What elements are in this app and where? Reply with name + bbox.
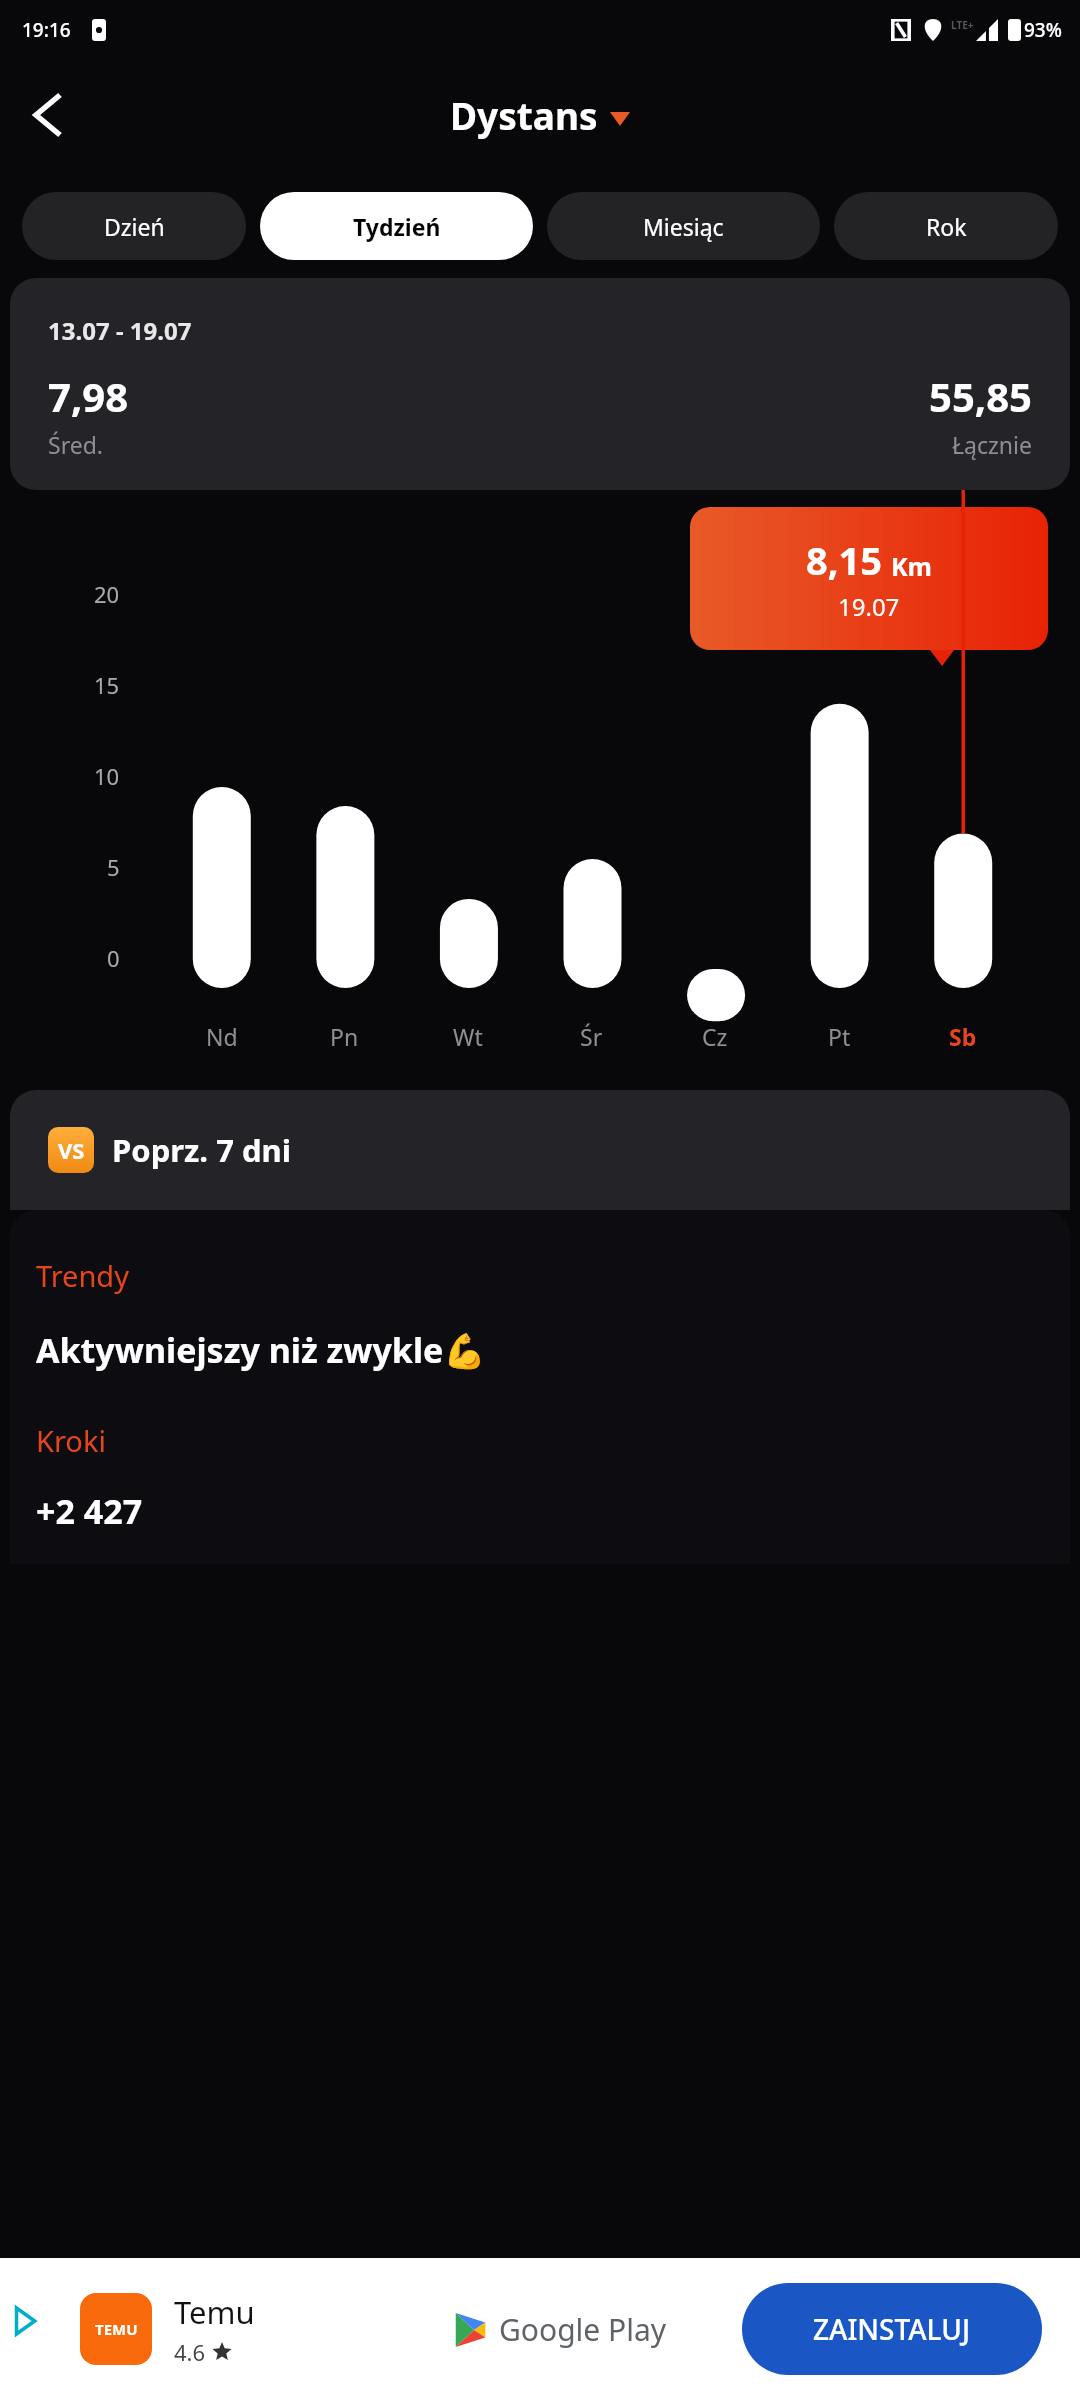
staticText: 19.07 [838, 590, 900, 623]
staticText: 19:16 [22, 17, 71, 43]
staticText: +2 427 [36, 1488, 143, 1534]
button[interactable]: 8,15 [690, 507, 1048, 650]
button[interactable]: Rok [834, 192, 1058, 260]
button[interactable]: ZAINSTALUJ [742, 2283, 1042, 2375]
staticText: TEMU [95, 2319, 138, 2339]
staticText: 20 [94, 579, 120, 609]
button[interactable]: Dystans [450, 90, 630, 140]
button[interactable]: TEMU [0, 2258, 1080, 2400]
staticText: Pt [828, 1021, 851, 1052]
staticText: Nd [206, 1021, 238, 1052]
staticText: 0 [107, 943, 120, 973]
staticText: Wt [453, 1021, 483, 1052]
staticText: Tydzień [353, 211, 441, 242]
staticText: Pn [330, 1021, 359, 1052]
staticText: 93% [1024, 17, 1062, 43]
staticText: Cz [702, 1021, 728, 1052]
staticText: Temu [174, 2291, 255, 2333]
staticText: 8,15 [806, 534, 883, 586]
staticText: VS [58, 1135, 85, 1165]
button[interactable]: Miesiąc [547, 192, 820, 260]
staticText: Łącznie [952, 429, 1032, 460]
staticText: 15 [94, 670, 120, 700]
button[interactable]: Tydzień [260, 192, 533, 260]
button[interactable]: Trendy [10, 1210, 1070, 1564]
staticText: Dystans [450, 90, 598, 140]
staticText: 4.6 [174, 2337, 206, 2367]
button[interactable]: 13.07 - 19.07 [10, 278, 1070, 490]
staticText: Śr [580, 1021, 603, 1052]
staticText: Rok [926, 211, 967, 242]
staticText: 13.07 - 19.07 [48, 314, 192, 347]
staticText: 55,85 [929, 369, 1032, 423]
button[interactable]: Back [20, 87, 76, 143]
staticText: Poprz. 7 dni [112, 1129, 291, 1171]
staticText: 7,98 [48, 369, 129, 423]
staticText: Aktywniejszy niż zwykle💪 [36, 1327, 486, 1373]
staticText: ZAINSTALUJ [813, 2310, 971, 2348]
staticText: Dzień [104, 211, 165, 242]
staticText: Sb [949, 1021, 977, 1052]
staticText: Kroki [36, 1421, 106, 1460]
staticText: Trendy [36, 1256, 129, 1295]
staticText: 5 [107, 852, 120, 882]
staticText: Miesiąc [643, 211, 724, 242]
staticText: Google Play [499, 2309, 667, 2350]
staticText: 10 [94, 761, 120, 791]
button[interactable]: Dzień [22, 192, 246, 260]
button[interactable]: VS [10, 1090, 1070, 1210]
staticText: LTE+ [951, 18, 974, 32]
staticText: Śred. [48, 429, 103, 460]
staticText: Km [891, 549, 932, 583]
